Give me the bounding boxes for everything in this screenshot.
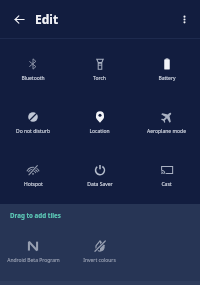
staticText: Battery [158, 75, 176, 82]
staticText: Torch [93, 75, 106, 82]
button[interactable]: Hotspot [0, 145, 66, 198]
staticText: Invert colours [83, 257, 116, 264]
staticText: Cast [161, 181, 172, 188]
button[interactable]: More options [172, 7, 196, 31]
button[interactable]: Cast [133, 145, 200, 198]
button[interactable]: Bluetooth [0, 39, 66, 92]
button[interactable]: Aeroplane mode [133, 92, 200, 145]
staticText: Aeroplane mode [147, 128, 186, 135]
button[interactable]: Android Beta Program [0, 223, 66, 276]
staticText: Data Saver [87, 181, 113, 188]
button[interactable]: Data Saver [66, 145, 133, 198]
staticText: Location [89, 128, 110, 135]
staticText: Hotspot [24, 181, 43, 188]
button[interactable]: Battery [133, 39, 200, 92]
button[interactable]: Do not disturb [0, 92, 66, 145]
staticText: Android Beta Program [7, 257, 60, 264]
button[interactable]: Torch [66, 39, 133, 92]
button[interactable]: Location [66, 92, 133, 145]
staticText: Bluetooth [21, 75, 45, 82]
staticText: Edit [35, 11, 59, 27]
button[interactable]: Navigate up [8, 8, 30, 30]
staticText: Do not disturb [16, 128, 50, 135]
staticText: Drag to add tiles [10, 211, 61, 219]
button[interactable]: Invert colours [66, 223, 133, 276]
